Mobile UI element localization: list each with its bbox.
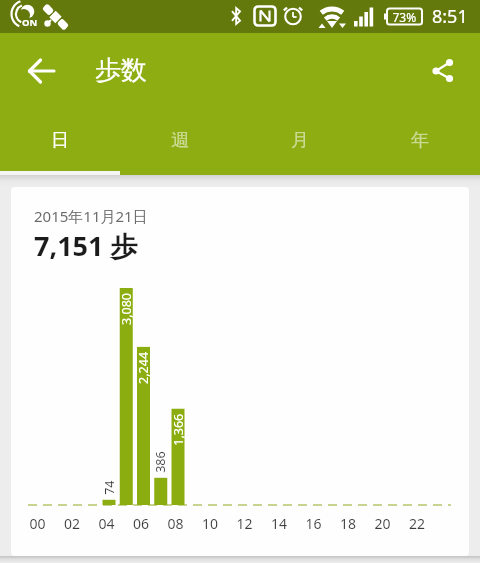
staticText: 年 bbox=[411, 129, 429, 152]
button[interactable] bbox=[417, 47, 465, 95]
button[interactable]: 日 bbox=[0, 107, 120, 173]
staticText: 月 bbox=[291, 129, 309, 152]
button[interactable]: 年 bbox=[360, 107, 480, 173]
staticText: 日 bbox=[51, 129, 69, 152]
button[interactable]: 月 bbox=[240, 107, 360, 173]
button[interactable]: 週 bbox=[120, 107, 240, 173]
button[interactable] bbox=[18, 47, 66, 95]
staticText: 歩数 bbox=[95, 54, 147, 87]
staticText: 週 bbox=[171, 129, 189, 152]
